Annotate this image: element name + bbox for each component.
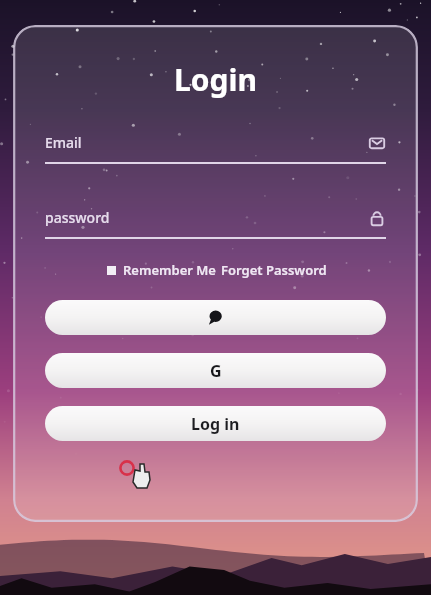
button[interactable]: Sign in with chat — [45, 300, 386, 335]
staticText: Login — [13, 59, 418, 100]
button[interactable]: Email — [45, 133, 386, 164]
staticText: Log in — [191, 413, 240, 435]
button[interactable]: Sign in with Google — [45, 353, 386, 388]
staticText: password — [45, 208, 368, 227]
button[interactable]: Log in — [45, 406, 386, 441]
button[interactable] — [105, 264, 118, 277]
staticText: G — [210, 360, 222, 382]
button[interactable]: Forget Password — [221, 261, 327, 279]
button[interactable]: Remember Me — [123, 261, 216, 279]
button[interactable]: password — [45, 208, 386, 239]
staticText: Email — [45, 133, 368, 152]
